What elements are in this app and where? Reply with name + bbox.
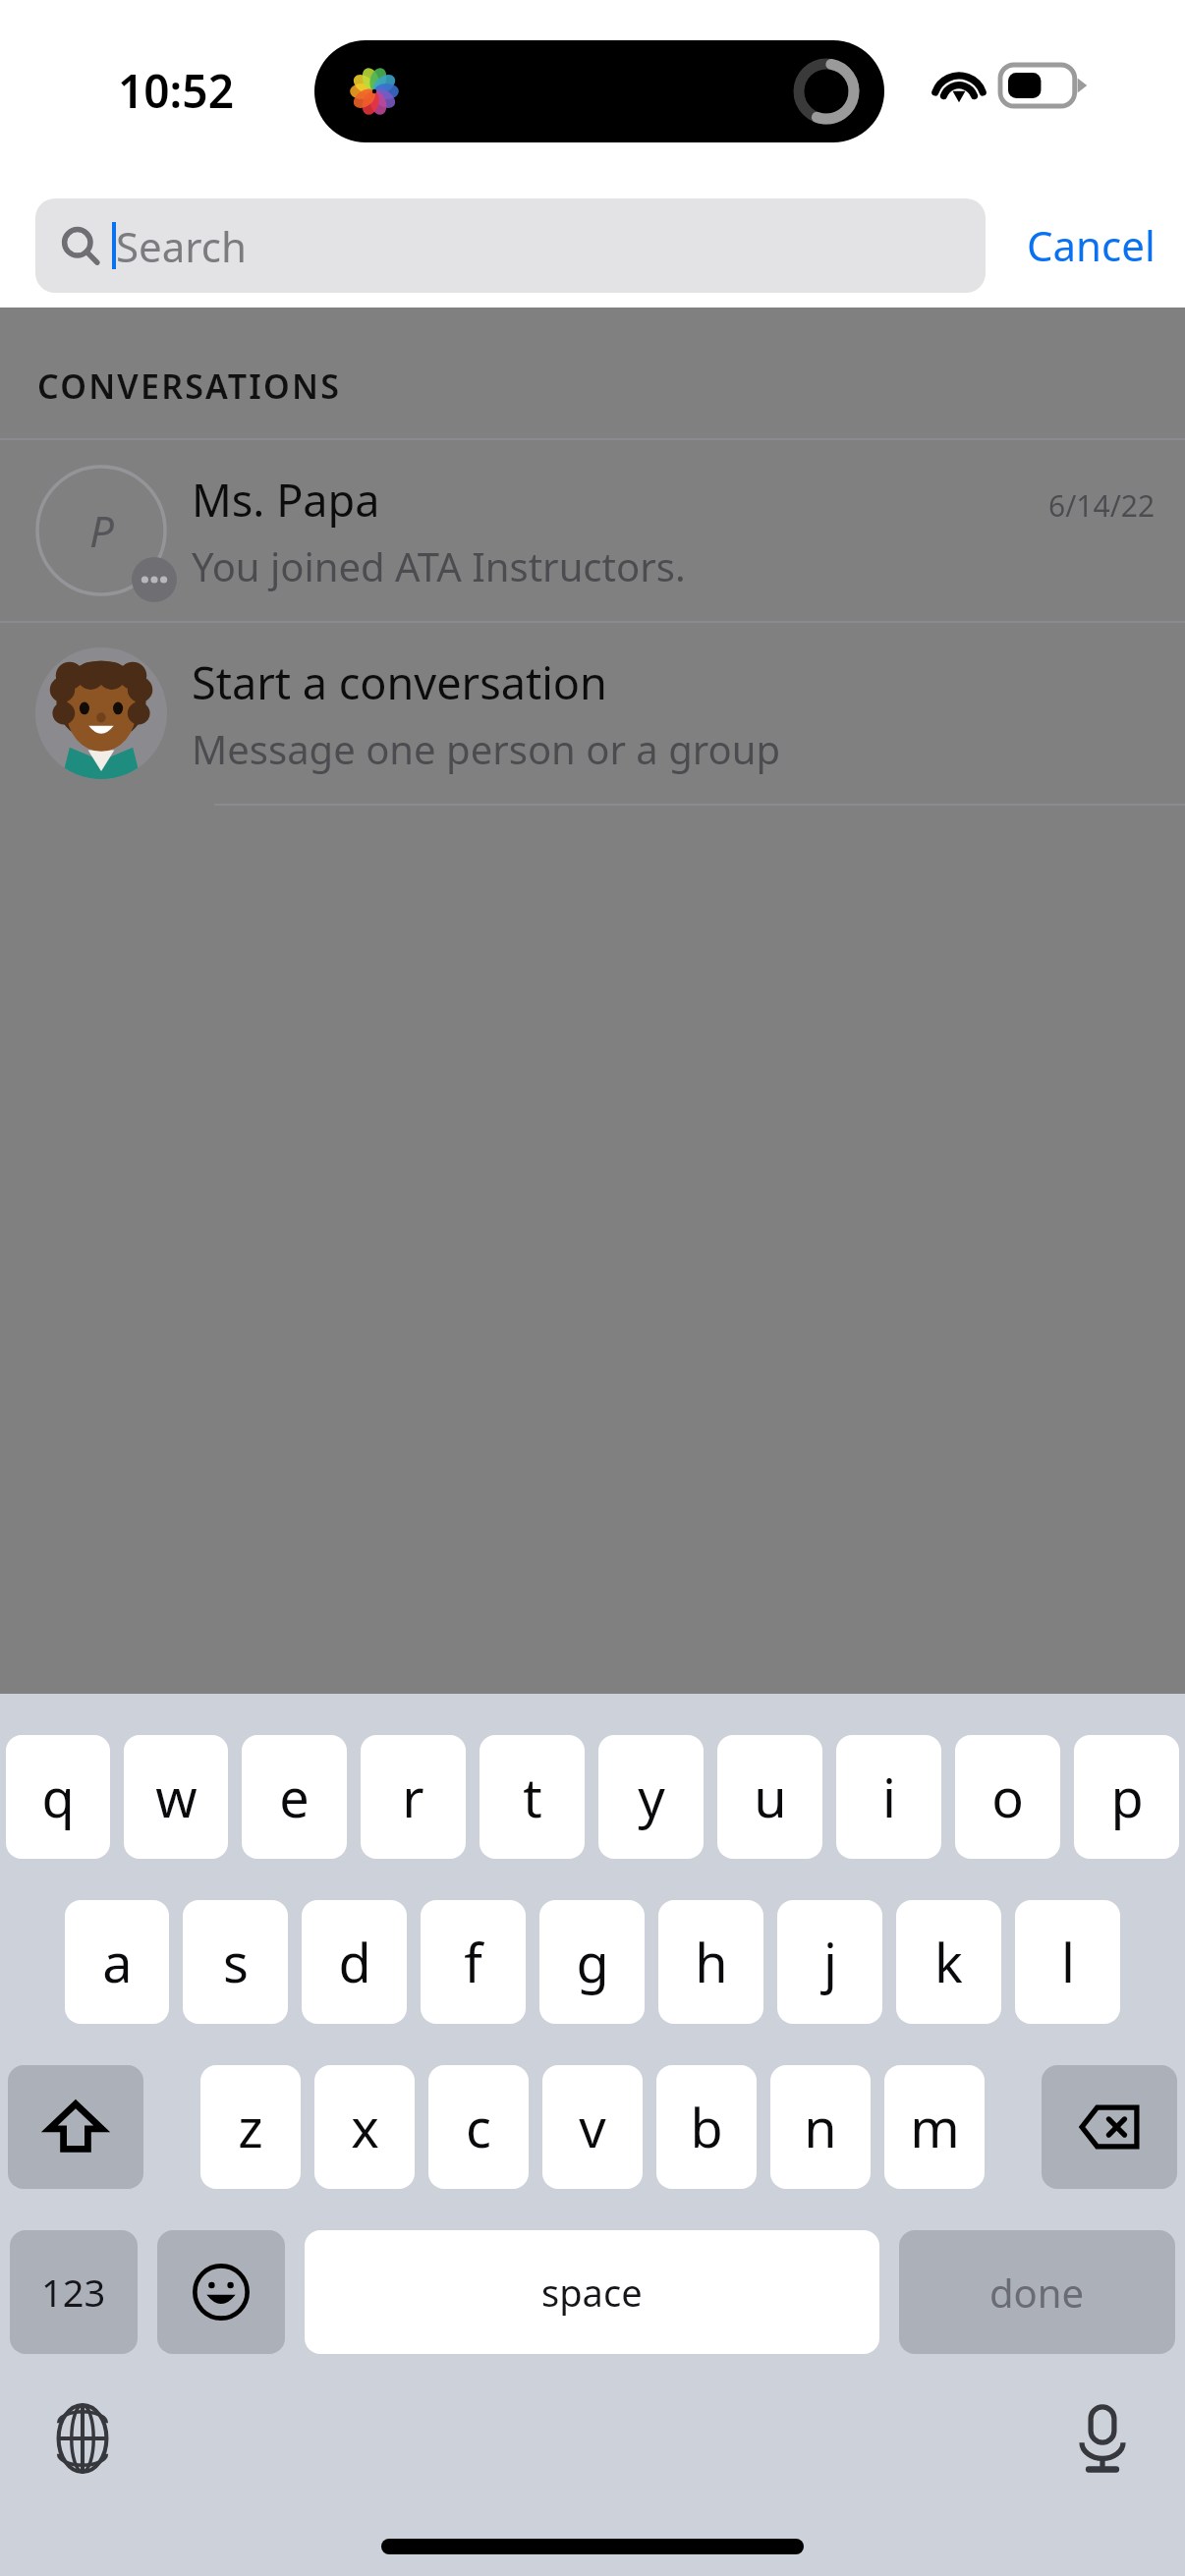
staticText: space [541,2267,643,2318]
staticText: You joined ATA Instructors. [192,539,686,592]
staticText: q [41,1761,75,1833]
button[interactable]: Shift [8,2065,143,2189]
staticText: y [638,1761,665,1833]
staticText: r [402,1761,424,1833]
staticText: j [823,1926,837,1998]
staticText: l [1061,1926,1075,1998]
button[interactable]: u [717,1735,822,1859]
button[interactable]: v [542,2065,643,2189]
staticText: x [351,2091,379,2163]
button[interactable]: a [65,1900,169,2024]
staticText: Message one person or a group [192,722,780,775]
button[interactable]: i [836,1735,941,1859]
staticText: a [102,1926,133,1998]
staticText: s [223,1926,249,1998]
button[interactable]: y [598,1735,704,1859]
staticText: t [523,1761,542,1833]
button[interactable]: Change keyboard [37,2393,128,2484]
staticText: h [695,1926,728,1998]
button[interactable]: g [539,1900,645,2024]
button[interactable]: b [656,2065,757,2189]
button[interactable]: q [6,1735,110,1859]
staticText: 123 [41,2267,106,2318]
button[interactable]: Dictate [1057,2393,1148,2484]
button[interactable]: d [302,1900,407,2024]
button[interactable]: f [421,1900,526,2024]
button[interactable]: j [777,1900,882,2024]
button[interactable]: x [314,2065,415,2189]
staticText: 10:52 [118,60,234,122]
staticText: b [690,2091,723,2163]
staticText: o [991,1761,1024,1833]
staticText: e [279,1761,310,1833]
button[interactable]: n [770,2065,871,2189]
button[interactable]: space [305,2230,879,2354]
staticText: k [934,1926,963,1998]
button[interactable]: h [658,1900,763,2024]
button[interactable]: o [955,1735,1060,1859]
button[interactable]: s [183,1900,288,2024]
button[interactable]: Search [35,198,986,293]
button[interactable]: z [200,2065,301,2189]
button[interactable]: k [896,1900,1001,2024]
staticText: i [882,1761,896,1833]
button[interactable]: Backspace [1042,2065,1177,2189]
staticText: f [464,1926,482,1998]
staticText: m [910,2091,960,2163]
staticText: u [754,1761,787,1833]
staticText: CONVERSATIONS [37,364,342,409]
button[interactable]: Cancel [997,183,1185,308]
staticText: d [338,1926,371,1998]
button[interactable]: e [242,1735,347,1859]
staticText: n [804,2091,837,2163]
staticText: Ms. Papa [192,470,380,530]
button[interactable]: c [428,2065,529,2189]
staticText: Start a conversation [192,652,607,712]
button[interactable]: w [124,1735,228,1859]
button[interactable]: r [361,1735,466,1859]
button[interactable]: Emoji [157,2230,285,2354]
button[interactable]: p [1074,1735,1179,1859]
button[interactable]: m [884,2065,985,2189]
button[interactable]: 123 [10,2230,138,2354]
button[interactable]: t [480,1735,585,1859]
button[interactable]: done [899,2230,1175,2354]
staticText: Cancel [1027,217,1156,273]
staticText: z [238,2091,263,2163]
staticText: c [466,2091,491,2163]
staticText: g [576,1926,609,1998]
button[interactable]: l [1015,1900,1120,2024]
staticText: v [579,2091,606,2163]
staticText: w [155,1761,197,1833]
staticText: p [1110,1761,1144,1833]
staticText: done [989,2266,1085,2319]
staticText: Search [116,218,247,274]
button[interactable]: P [0,440,1185,621]
staticText: 6/14/22 [1048,485,1156,526]
button[interactable]: Start a conversation [0,623,1185,804]
staticText: P [89,501,114,560]
